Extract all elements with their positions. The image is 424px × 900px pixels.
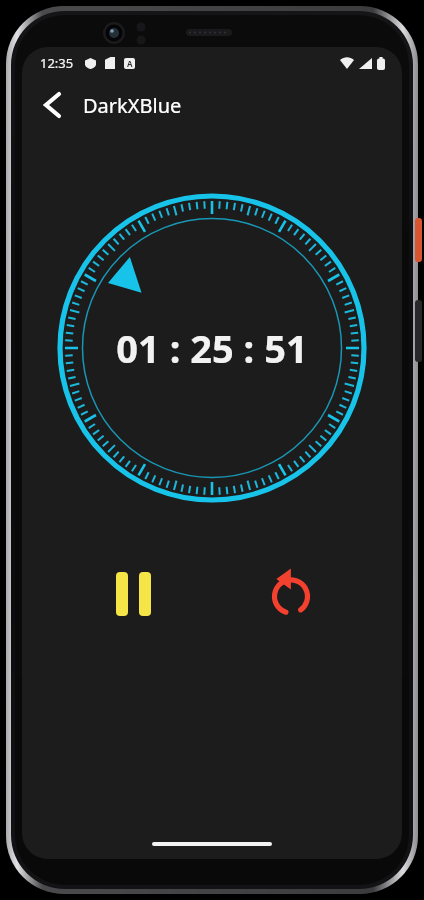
- button[interactable]: Back: [30, 83, 74, 127]
- staticText: DarkXBlue: [83, 92, 182, 119]
- button[interactable]: Pause: [100, 561, 166, 627]
- staticText: 01 : 25 : 51: [116, 322, 308, 374]
- button[interactable]: Reset: [258, 561, 324, 627]
- staticText: 12:35: [40, 54, 74, 72]
- staticText: A: [127, 58, 133, 69]
